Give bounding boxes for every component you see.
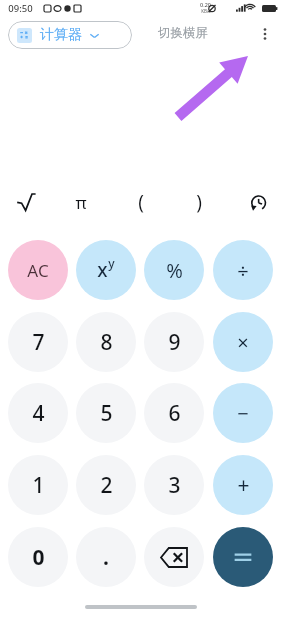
- button[interactable]: 6: [144, 383, 204, 443]
- button[interactable]: +: [213, 455, 273, 515]
- staticText: 9: [168, 328, 181, 357]
- staticText: 计算器: [40, 26, 82, 44]
- button[interactable]: Backspace: [144, 527, 204, 587]
- staticText: 2: [100, 471, 113, 500]
- staticText: %: [166, 257, 183, 284]
- staticText: ): [196, 189, 202, 215]
- staticText: +: [237, 471, 250, 500]
- button[interactable]: %: [144, 240, 204, 300]
- staticText: x: [97, 257, 108, 283]
- button[interactable]: 3: [144, 455, 204, 515]
- button[interactable]: More options: [252, 21, 278, 47]
- staticText: 0: [32, 543, 45, 572]
- staticText: 7: [32, 328, 45, 357]
- staticText: 1: [32, 471, 45, 500]
- staticText: 5: [100, 399, 113, 428]
- staticText: 4: [32, 399, 45, 428]
- button[interactable]: x: [76, 240, 136, 300]
- button[interactable]: Equals: [213, 527, 273, 587]
- button[interactable]: 4: [8, 383, 68, 443]
- staticText: π: [75, 191, 87, 214]
- staticText: y: [108, 255, 115, 271]
- staticText: 09:50: [8, 2, 33, 15]
- staticText: 8: [100, 328, 113, 357]
- staticText: −: [237, 400, 249, 427]
- button[interactable]: 计算器: [8, 21, 132, 49]
- button[interactable]: AC: [8, 240, 68, 300]
- staticText: (: [138, 189, 144, 215]
- button[interactable]: Square root: [8, 182, 44, 222]
- button[interactable]: ×: [213, 312, 273, 372]
- staticText: .: [103, 543, 109, 572]
- button[interactable]: .: [76, 527, 136, 587]
- staticText: 6: [168, 399, 181, 428]
- button[interactable]: 9: [144, 312, 204, 372]
- button[interactable]: 0: [8, 527, 68, 587]
- button[interactable]: 5: [76, 383, 136, 443]
- staticText: AC: [27, 259, 49, 282]
- button[interactable]: 切换横屏: [156, 23, 210, 43]
- button[interactable]: ÷: [213, 240, 273, 300]
- staticText: KB/s: [201, 8, 211, 14]
- staticText: 切换横屏: [158, 25, 208, 41]
- button[interactable]: (: [123, 182, 159, 222]
- staticText: ÷: [237, 257, 249, 284]
- button[interactable]: 8: [76, 312, 136, 372]
- staticText: ×: [237, 329, 249, 356]
- button[interactable]: 2: [76, 455, 136, 515]
- button[interactable]: π: [63, 182, 99, 222]
- button[interactable]: 1: [8, 455, 68, 515]
- button[interactable]: 7: [8, 312, 68, 372]
- button[interactable]: ): [181, 182, 217, 222]
- button[interactable]: −: [213, 383, 273, 443]
- staticText: 0.20: [200, 1, 211, 8]
- button[interactable]: History: [239, 182, 275, 222]
- staticText: 3: [168, 471, 181, 500]
